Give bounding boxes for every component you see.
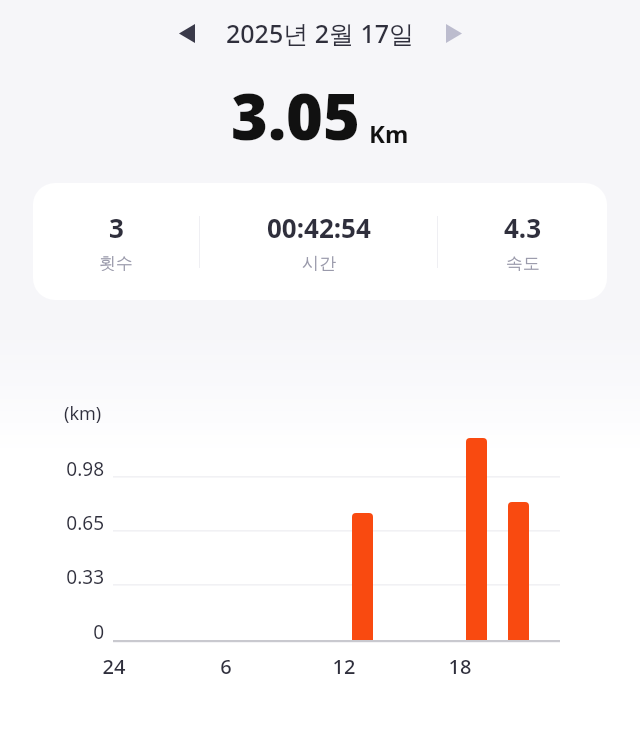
staticText: 12: [308, 653, 380, 680]
staticText: Km: [369, 117, 409, 150]
staticText: 0: [34, 619, 104, 645]
staticText: 3.05: [231, 73, 360, 159]
staticText: 0.65: [34, 510, 104, 536]
staticText: (km): [64, 401, 102, 426]
button[interactable]: Previous day: [166, 12, 208, 54]
staticText: 0.33: [34, 564, 104, 590]
staticText: 시간: [302, 253, 336, 274]
staticText: 속도: [506, 253, 540, 274]
staticText: 18: [424, 653, 496, 680]
staticText: 0.98: [34, 456, 104, 482]
button[interactable]: 3: [33, 183, 607, 300]
staticText: 6: [190, 653, 262, 680]
staticText: 2025년 2월 17일: [226, 16, 415, 50]
staticText: 24: [78, 653, 150, 680]
button[interactable]: 00:42:54: [200, 183, 437, 300]
staticText: 00:42:54: [267, 210, 371, 245]
staticText: 3: [109, 210, 124, 245]
staticText: 4.3: [504, 210, 542, 245]
button[interactable]: Next day: [433, 12, 475, 54]
button[interactable]: 3: [33, 183, 199, 300]
button[interactable]: 4.3: [438, 183, 607, 300]
staticText: 횟수: [99, 253, 133, 274]
